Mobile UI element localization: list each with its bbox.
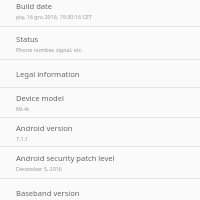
staticText: Android security patch level xyxy=(16,153,115,163)
staticText: December 5, 2016 xyxy=(16,165,62,172)
staticText: Phone number, signal, etc. xyxy=(16,46,83,53)
button[interactable]: Android security patch level xyxy=(0,147,200,178)
staticText: 7.1.1 xyxy=(16,135,29,142)
staticText: Build date xyxy=(16,1,53,11)
staticText: Mi-4c xyxy=(16,105,30,112)
button[interactable]: Baseband version xyxy=(0,179,200,200)
staticText: Status xyxy=(16,34,39,44)
staticText: pią, 16 gru 2016, 19:30:16 CET xyxy=(16,13,92,20)
staticText: Device model xyxy=(16,93,64,103)
button[interactable]: Build date xyxy=(0,0,200,26)
button[interactable]: Android version xyxy=(0,118,200,146)
staticText: Baseband version xyxy=(16,188,80,198)
staticText: Android version xyxy=(16,123,73,133)
button[interactable]: Device model xyxy=(0,88,200,117)
staticText: Legal information xyxy=(16,69,80,79)
button[interactable]: Legal information xyxy=(0,60,200,87)
button[interactable]: Status xyxy=(0,27,200,59)
